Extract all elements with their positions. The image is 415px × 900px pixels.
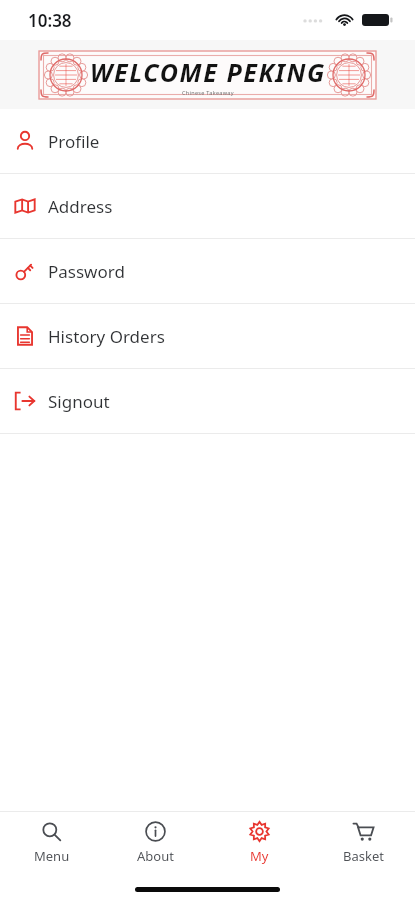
staticText: About (137, 847, 174, 865)
staticText: 10:38 (28, 9, 72, 32)
staticText: Password (48, 260, 125, 283)
staticText: Menu (34, 847, 70, 865)
button[interactable]: About (103, 812, 207, 874)
staticText: Signout (48, 390, 110, 413)
staticText: History Orders (48, 325, 165, 348)
button[interactable]: History Orders (0, 304, 415, 368)
button[interactable]: Password (0, 239, 415, 303)
button[interactable]: Profile (0, 109, 415, 173)
staticText: Profile (48, 130, 100, 153)
staticText: Address (48, 195, 113, 218)
staticText: WELCOME PEKING (90, 55, 326, 89)
button[interactable]: Menu (0, 812, 103, 874)
button[interactable]: Address (0, 174, 415, 238)
staticText: Chinese Takeaway (182, 89, 234, 96)
button[interactable]: Signout (0, 369, 415, 433)
button[interactable]: My (207, 812, 311, 874)
staticText: Basket (343, 847, 384, 865)
staticText: My (250, 847, 269, 865)
button[interactable]: Basket (311, 812, 415, 874)
